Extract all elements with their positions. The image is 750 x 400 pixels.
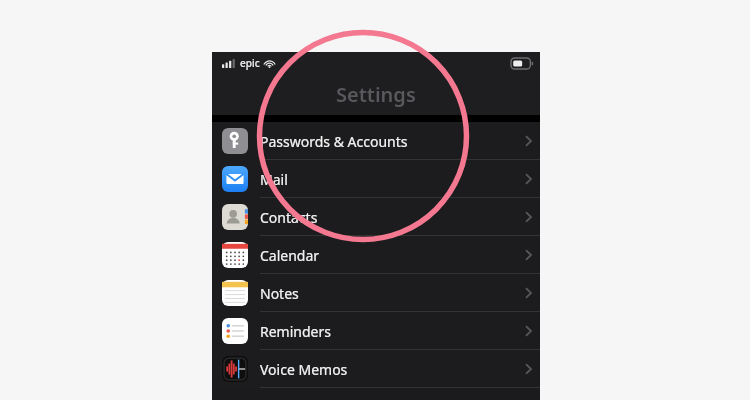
button[interactable]: Voice Memos [212,350,540,388]
button[interactable]: Contacts [212,198,540,236]
staticText: Settings [336,81,416,108]
button[interactable]: Mail [212,160,540,198]
staticText: Passwords & Accounts [260,132,408,151]
staticText: Notes [260,284,299,303]
button[interactable]: Passwords & Accounts [212,122,540,160]
button[interactable]: Calendar [212,236,540,274]
staticText: Reminders [260,322,331,341]
staticText: Voice Memos [260,360,348,379]
staticText: epic [240,56,260,70]
staticText: Calendar [260,246,320,265]
button[interactable]: Notes [212,274,540,312]
button[interactable]: Reminders [212,312,540,350]
staticText: Mail [260,170,288,189]
staticText: Contacts [260,208,318,227]
other: Battery [511,58,533,69]
